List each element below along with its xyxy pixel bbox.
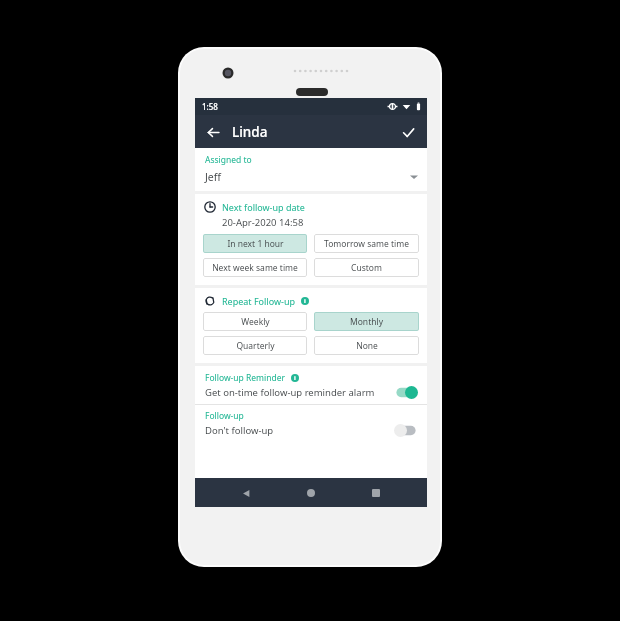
staticText: Next follow-up date [222,201,305,213]
button[interactable]: Monthly [314,312,419,331]
button[interactable]: Info [291,374,299,382]
button[interactable]: Back [201,120,225,144]
staticText: i [304,297,306,305]
staticText: Quarterly [236,340,275,352]
staticText: None [356,340,378,352]
staticText: Next week same time [212,262,298,274]
staticText: Don't follow-up [205,424,274,437]
staticText: 20-Apr-2020 14:58 [222,216,304,229]
button[interactable]: Get on-time follow-up reminder alarm [195,384,427,404]
staticText: Monthly [350,316,383,328]
staticText: In next 1 hour [227,238,284,250]
staticText: 1:58 [202,101,218,112]
staticText: Tomorrow same time [324,238,409,250]
button[interactable]: Save [396,120,420,144]
staticText: Get on-time follow-up reminder alarm [205,386,375,399]
button[interactable]: Next week same time [203,258,307,277]
button[interactable]: Assigned to [195,148,427,191]
button[interactable]: Toggle off [394,424,418,437]
button[interactable]: Don't follow-up [195,422,427,443]
staticText: Follow-up Reminder [205,372,286,384]
button[interactable]: Info [301,297,309,305]
staticText: Assigned to [205,154,252,166]
staticText: Repeat Follow-up [222,295,296,307]
button[interactable]: None [314,336,419,355]
button[interactable]: Weekly [203,312,307,331]
button[interactable]: Recents [362,479,390,507]
staticText: i [294,374,296,382]
staticText: Linda [232,123,268,141]
button[interactable]: Back [232,479,260,507]
button[interactable]: Quarterly [203,336,307,355]
button[interactable]: Tomorrow same time [314,234,419,253]
staticText: Custom [351,262,382,274]
staticText: Follow-up [205,410,244,422]
staticText: Weekly [241,316,270,328]
button[interactable]: Custom [314,258,419,277]
staticText: Jeff [205,170,222,184]
button[interactable]: Home [297,479,325,507]
button[interactable]: Toggle on [394,386,418,399]
button[interactable]: In next 1 hour [203,234,307,253]
